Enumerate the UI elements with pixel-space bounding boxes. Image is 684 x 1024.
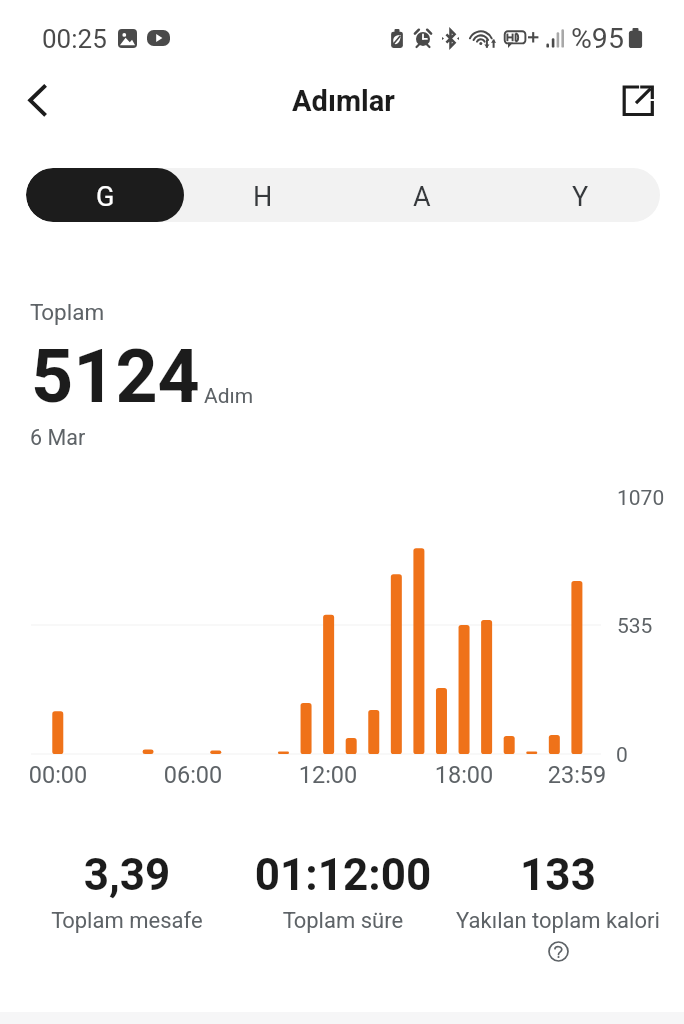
- staticText: Adımlar: [292, 81, 395, 124]
- button[interactable]: 01:12:00: [233, 844, 453, 941]
- button[interactable]: H: [184, 168, 342, 222]
- staticText: 18:00: [419, 758, 509, 793]
- staticText: Toplam: [30, 296, 105, 329]
- staticText: Adım: [204, 381, 254, 412]
- staticText: 6 Mar: [30, 422, 86, 454]
- button[interactable]: G: [26, 168, 184, 222]
- staticText: 1070: [617, 483, 665, 514]
- button[interactable]: Y: [501, 168, 660, 222]
- staticText: 23:59: [532, 758, 622, 793]
- staticText: 0: [616, 740, 628, 771]
- button[interactable]: Back: [8, 74, 62, 128]
- staticText: A: [413, 178, 431, 218]
- button[interactable]: 133: [448, 844, 668, 962]
- staticText: 5124: [31, 325, 200, 433]
- staticText: 06:00: [148, 758, 238, 793]
- button[interactable]: 3,39: [17, 844, 237, 941]
- staticText: Toplam süre: [233, 905, 453, 937]
- staticText: 3,39: [17, 844, 237, 909]
- staticText: H: [253, 178, 273, 218]
- staticText: Toplam mesafe: [17, 905, 237, 937]
- staticText: Y: [572, 178, 589, 218]
- staticText: 133: [448, 844, 668, 909]
- staticText: G: [96, 178, 115, 218]
- staticText: %95: [571, 18, 624, 60]
- button[interactable]: A: [342, 168, 501, 222]
- staticText: 12:00: [283, 758, 373, 793]
- staticText: Yakılan toplam kalori: [448, 905, 668, 937]
- staticText: 535: [617, 611, 653, 642]
- staticText: 00:00: [13, 758, 103, 793]
- button[interactable]: Share: [612, 74, 666, 128]
- staticText: 01:12:00: [233, 844, 453, 909]
- staticText: 00:25: [42, 21, 107, 59]
